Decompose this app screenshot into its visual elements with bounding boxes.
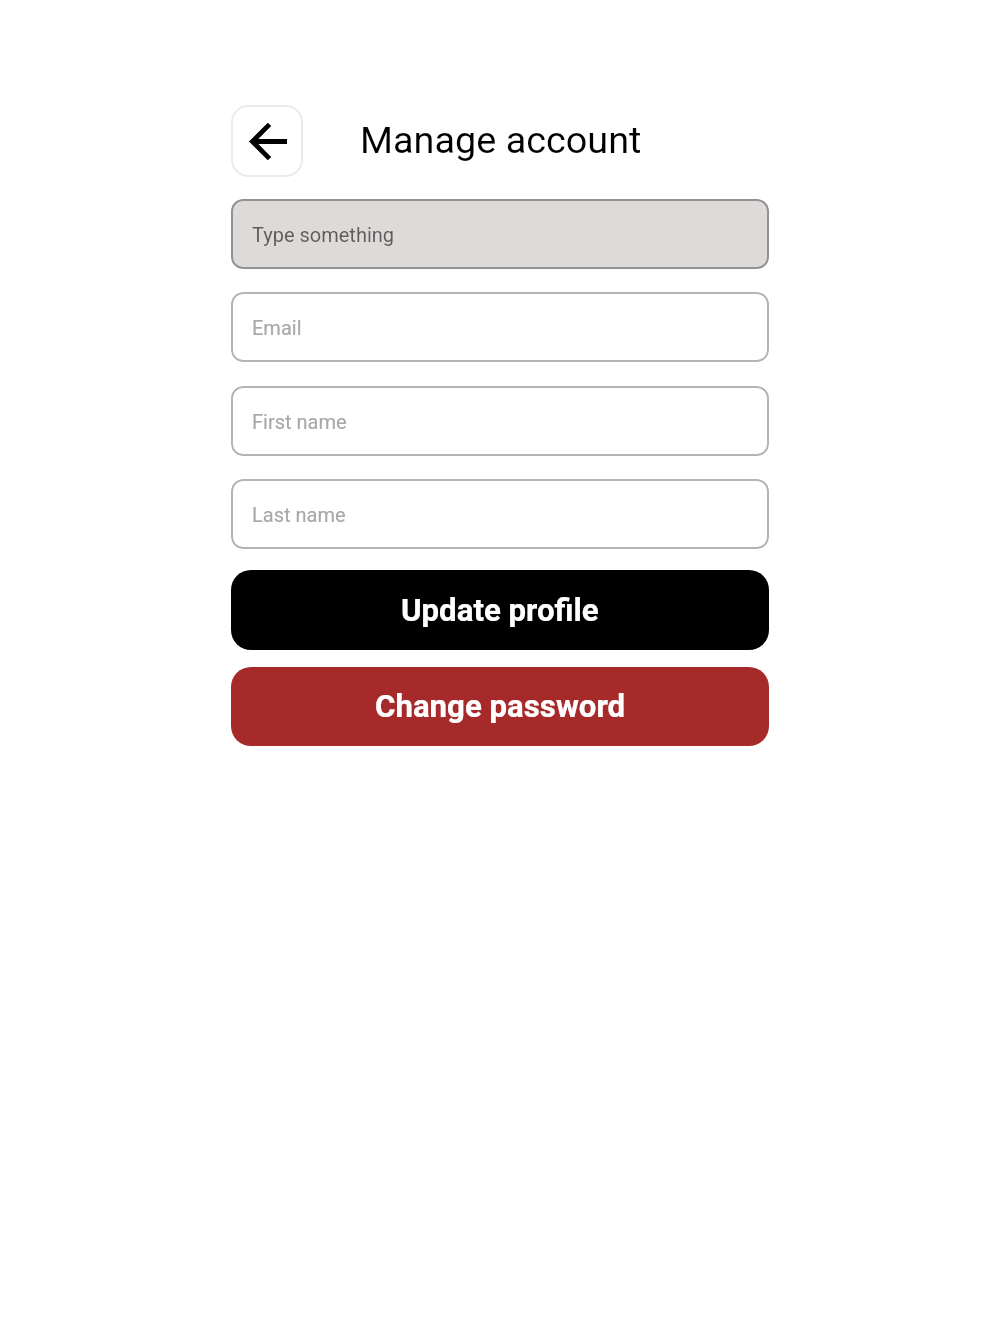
button[interactable]: Type something: [231, 199, 769, 269]
button[interactable]: Email: [231, 292, 769, 362]
button[interactable]: Update profile: [231, 570, 769, 650]
staticText: Manage account: [360, 118, 642, 162]
staticText: Email: [252, 316, 302, 339]
button[interactable]: First name: [231, 386, 769, 456]
staticText: Change password: [375, 688, 626, 725]
staticText: Type something: [252, 223, 395, 246]
button[interactable]: Change password: [231, 667, 769, 746]
button[interactable]: Back: [231, 105, 303, 177]
staticText: Last name: [252, 503, 346, 526]
button[interactable]: Last name: [231, 479, 769, 549]
staticText: First name: [252, 410, 347, 433]
staticText: Update profile: [401, 592, 599, 629]
